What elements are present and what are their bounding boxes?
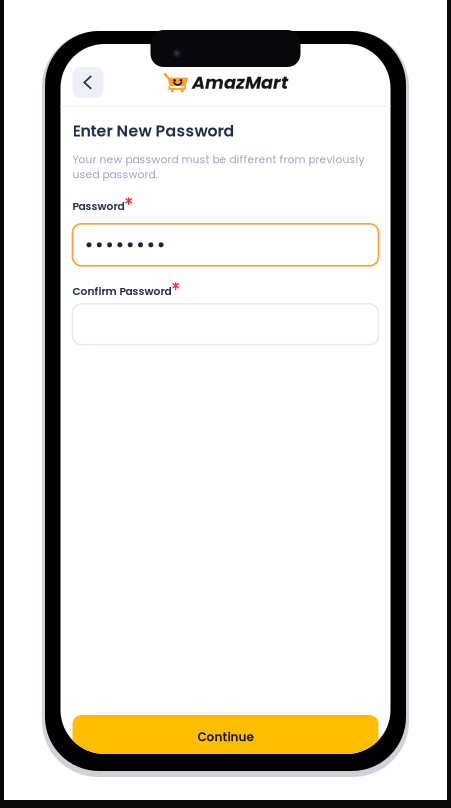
staticText: AmazMart [192, 70, 288, 95]
staticText: Password [72, 199, 124, 214]
button[interactable]: Back [72, 67, 103, 98]
staticText: Your new password must be different from… [72, 152, 364, 182]
staticText: Continue [197, 729, 253, 745]
button[interactable]: Continue [72, 715, 378, 754]
staticText: Enter New Password [72, 120, 234, 142]
staticText: Confirm Password [72, 284, 171, 299]
